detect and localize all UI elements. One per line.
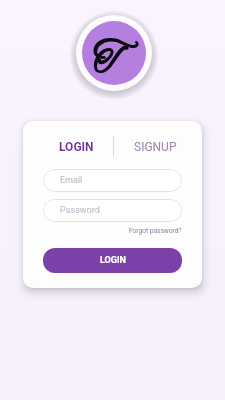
staticText: SIGNUP (134, 140, 177, 154)
button[interactable]: LOGIN (43, 136, 94, 157)
button[interactable]: Email (43, 169, 182, 192)
staticText: LOGIN (59, 140, 94, 154)
button[interactable]: SIGNUP (114, 136, 177, 157)
other: App logo (70, 9, 158, 97)
button[interactable]: Password (43, 199, 182, 222)
staticText: Forgot password? (129, 227, 182, 235)
button[interactable]: LOGIN (43, 248, 182, 273)
staticText: Email (60, 175, 83, 186)
button[interactable]: Forgot password? (129, 227, 182, 235)
staticText: LOGIN (100, 255, 126, 266)
staticText: Password (60, 205, 100, 216)
